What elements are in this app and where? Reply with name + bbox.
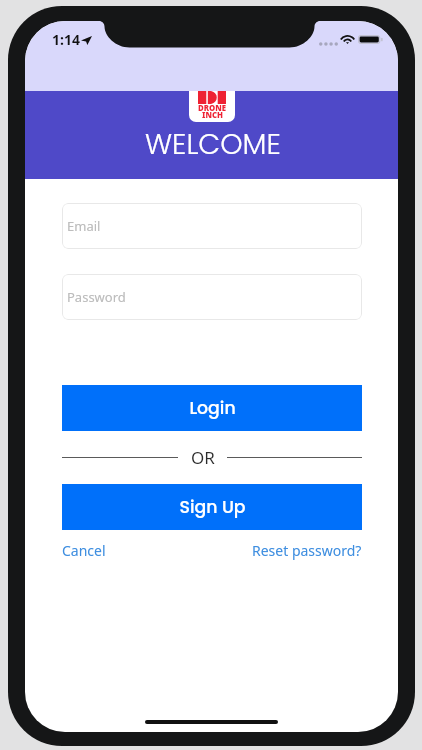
staticText: INCH: [202, 110, 223, 121]
staticText: Sign Up: [179, 495, 246, 519]
staticText: WELCOME: [145, 124, 281, 164]
button[interactable]: Cancel: [62, 541, 106, 560]
staticText: Login: [189, 396, 236, 420]
button[interactable]: Password: [62, 274, 362, 320]
staticText: Password: [67, 288, 126, 306]
staticText: 1:14: [52, 30, 80, 49]
button[interactable]: Sign Up: [62, 484, 362, 530]
button[interactable]: Email: [62, 203, 362, 249]
button[interactable]: Login: [62, 385, 362, 431]
staticText: OR: [191, 446, 215, 469]
staticText: DRONE: [198, 103, 226, 114]
button[interactable]: Reset password?: [252, 541, 362, 560]
staticText: Email: [67, 217, 101, 235]
